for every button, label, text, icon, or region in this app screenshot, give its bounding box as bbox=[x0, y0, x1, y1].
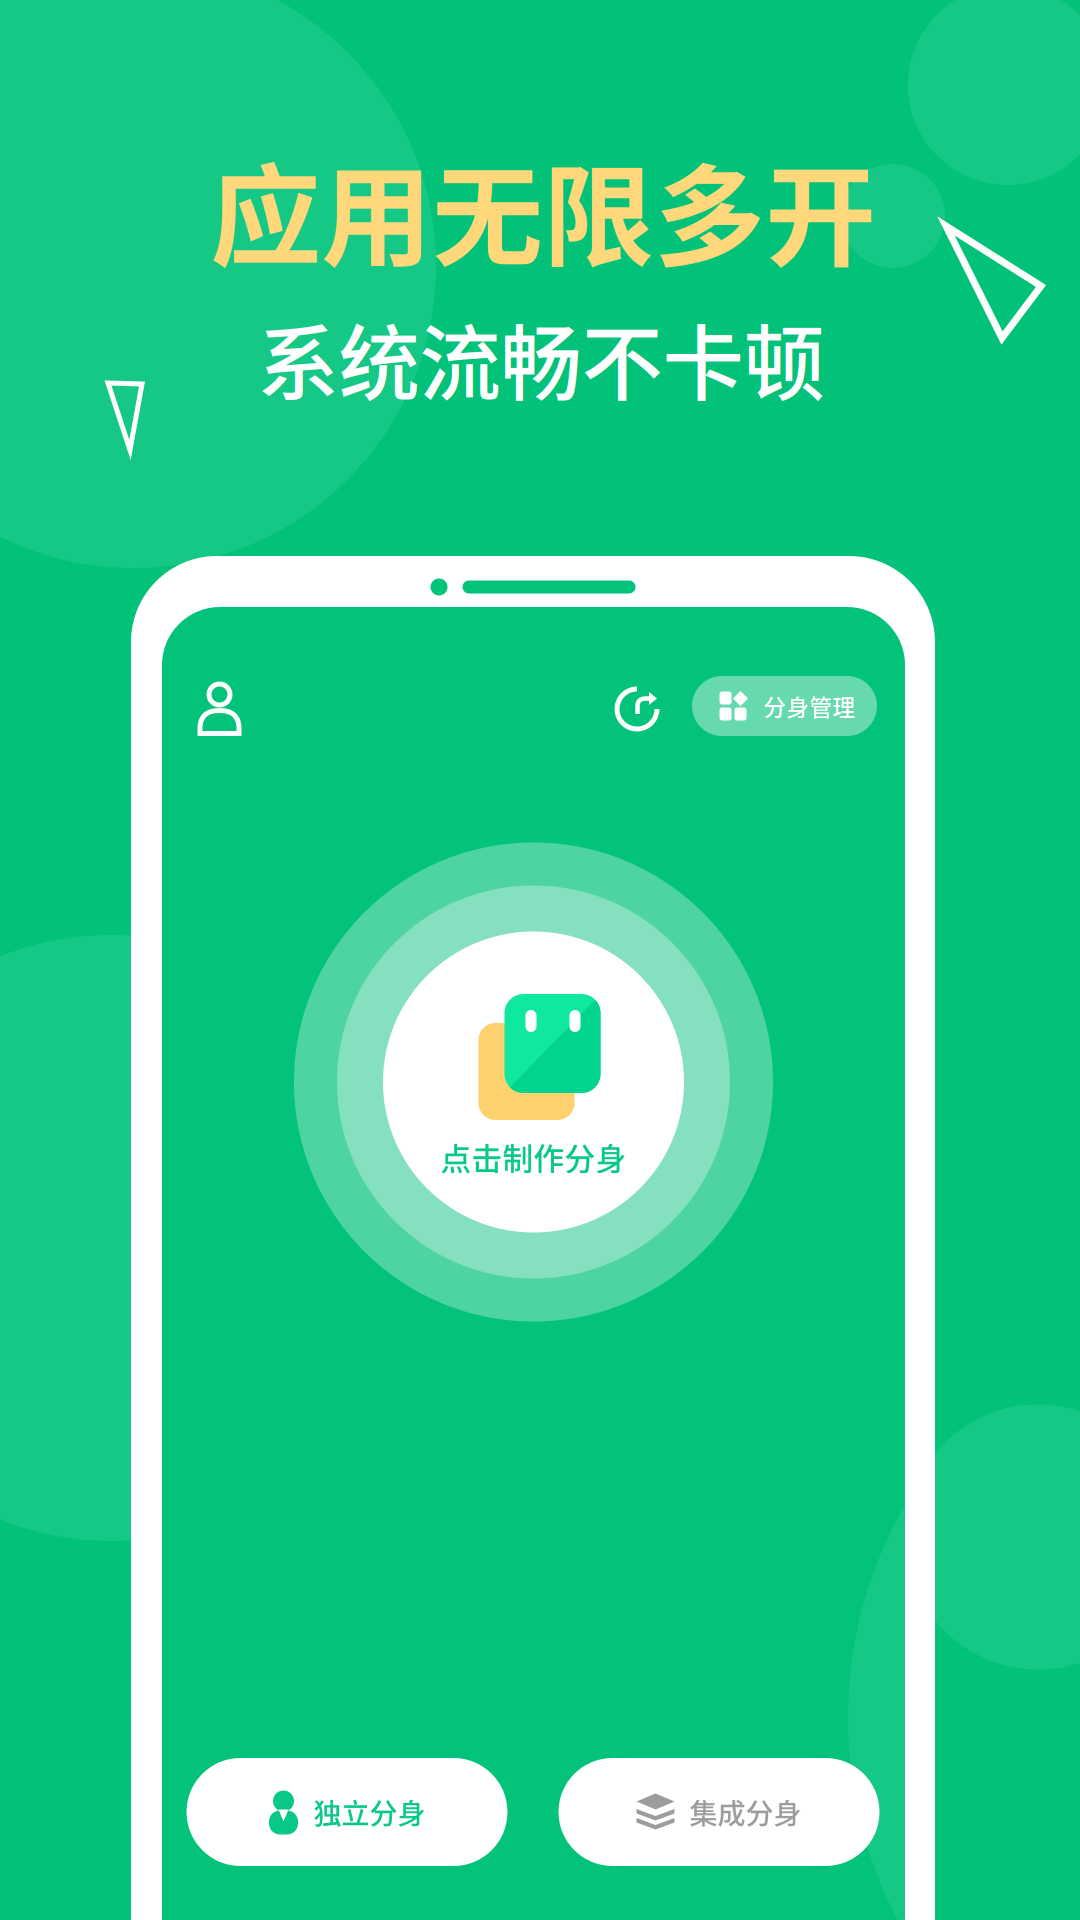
button[interactable]: 点击制作分身 bbox=[383, 931, 684, 1232]
button[interactable]: 集成分身 bbox=[558, 1758, 879, 1866]
button[interactable]: 独立分身 bbox=[186, 1758, 507, 1866]
staticText: 集成分身 bbox=[689, 1792, 801, 1832]
staticText: 分身管理 bbox=[763, 690, 855, 722]
button[interactable]: 个人中心 bbox=[194, 679, 244, 737]
button[interactable]: 分身管理 bbox=[692, 676, 877, 736]
staticText: 系统流畅不卡顿 bbox=[257, 299, 824, 417]
staticText: 点击制作分身 bbox=[440, 1135, 626, 1179]
button[interactable]: 刷新 bbox=[612, 684, 664, 736]
staticText: 独立分身 bbox=[313, 1792, 425, 1832]
staticText: 应用无限多开 bbox=[210, 129, 876, 289]
